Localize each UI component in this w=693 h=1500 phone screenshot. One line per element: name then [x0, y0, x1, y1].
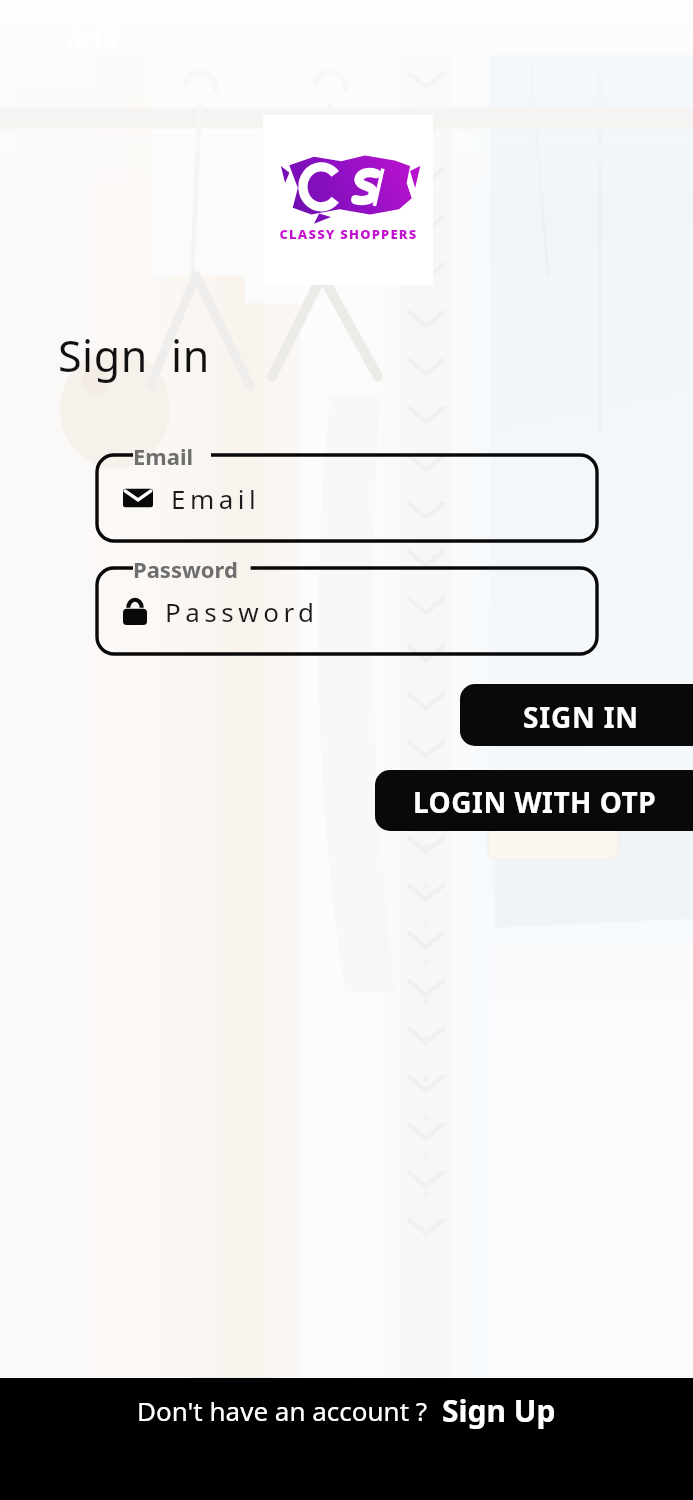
staticText: Email	[133, 441, 194, 471]
button[interactable]: Password	[97, 554, 597, 654]
button[interactable]: Don't have an account ?	[0, 1378, 693, 1500]
staticText: Don't have an account ?	[137, 1393, 428, 1428]
staticText: LOGIN WITH OTP	[413, 783, 657, 821]
staticText: SIGN IN	[523, 698, 639, 736]
button[interactable]: Email	[97, 441, 597, 541]
staticText: Password	[133, 554, 238, 584]
button[interactable]: SIGN IN	[460, 684, 693, 746]
button[interactable]: LOGIN WITH OTP	[375, 770, 693, 831]
staticText: Email	[171, 481, 261, 516]
staticText: CLASSY SHOPPERS	[279, 225, 418, 243]
staticText: Password	[165, 594, 319, 629]
staticText: Sign in	[58, 326, 210, 385]
staticText: Sign Up	[442, 1390, 556, 1431]
